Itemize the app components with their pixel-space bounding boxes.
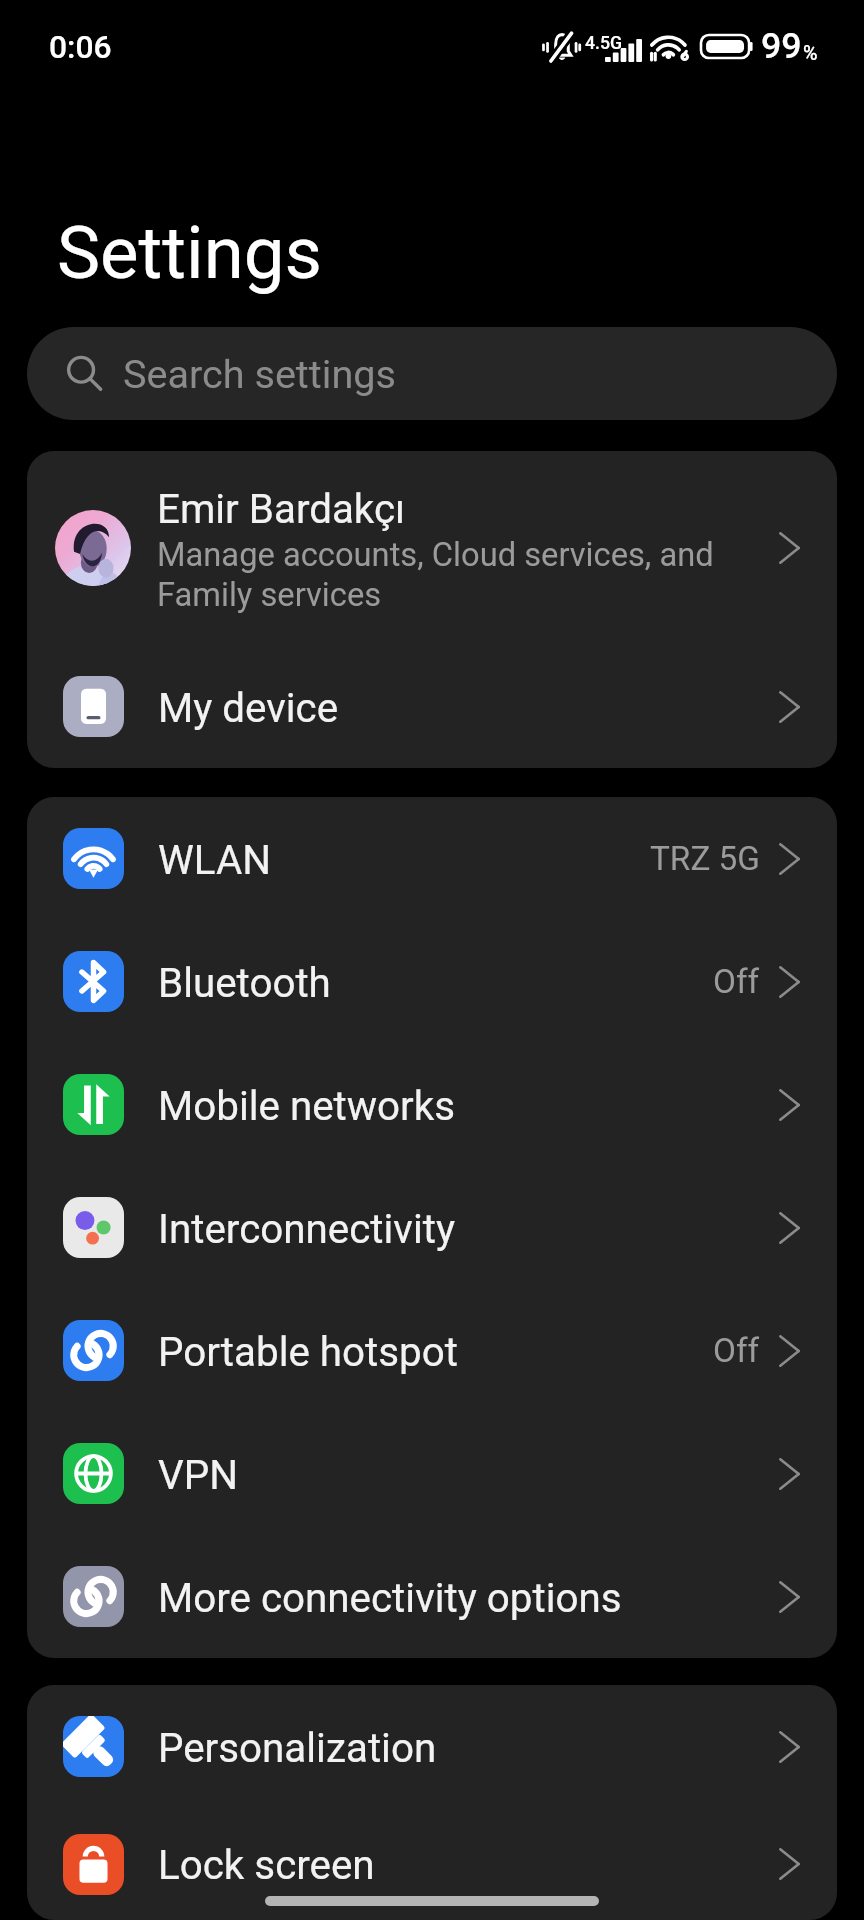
button[interactable]: Lock screen bbox=[27, 1808, 837, 1920]
button[interactable]: VPN bbox=[27, 1412, 837, 1535]
staticText: Emir Bardakçı bbox=[157, 482, 406, 534]
staticText: Settings bbox=[57, 211, 323, 296]
staticText: More connectivity options bbox=[158, 1571, 622, 1623]
staticText: Search settings bbox=[123, 350, 396, 398]
staticText: WLAN bbox=[158, 833, 271, 885]
button[interactable]: Emir Bardakçı bbox=[27, 451, 837, 645]
staticText: Personalization bbox=[158, 1721, 437, 1773]
button[interactable]: Search settings bbox=[27, 327, 837, 420]
staticText: 4.5G bbox=[585, 33, 623, 54]
staticText: Portable hotspot bbox=[158, 1325, 458, 1377]
staticText: My device bbox=[158, 681, 339, 733]
staticText: Off bbox=[713, 1331, 760, 1370]
button[interactable]: My device bbox=[27, 645, 837, 768]
staticText: Interconnectivity bbox=[158, 1202, 455, 1254]
staticText: % bbox=[803, 42, 818, 65]
staticText: Manage accounts, Cloud services, and Fam… bbox=[157, 534, 718, 614]
staticText: Lock screen bbox=[158, 1838, 375, 1890]
staticText: TRZ 5G bbox=[650, 839, 760, 878]
button[interactable]: Mobile networks bbox=[27, 1043, 837, 1166]
button[interactable]: More connectivity options bbox=[27, 1535, 837, 1658]
staticText: 0:06 bbox=[49, 28, 112, 65]
staticText: Mobile networks bbox=[158, 1079, 456, 1131]
button[interactable]: WLAN bbox=[27, 797, 837, 920]
staticText: Off bbox=[713, 962, 760, 1001]
staticText: Bluetooth bbox=[158, 956, 331, 1008]
staticText: 99 bbox=[761, 25, 802, 67]
staticText: VPN bbox=[158, 1448, 238, 1500]
button[interactable]: Personalization bbox=[27, 1685, 837, 1808]
button[interactable]: Interconnectivity bbox=[27, 1166, 837, 1289]
button[interactable]: Bluetooth bbox=[27, 920, 837, 1043]
button[interactable]: Portable hotspot bbox=[27, 1289, 837, 1412]
